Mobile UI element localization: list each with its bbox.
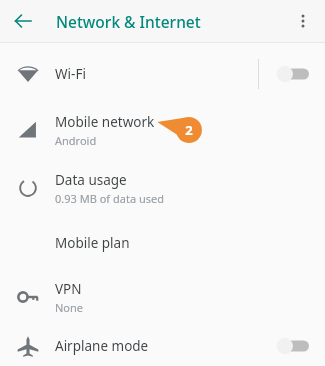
staticText: Data usage — [55, 171, 127, 189]
staticText: Wi-Fi — [55, 65, 86, 83]
staticText: Mobile network — [55, 113, 155, 131]
button[interactable]: Wi-Fi switch — [271, 59, 317, 89]
staticText: VPN — [55, 280, 82, 298]
button[interactable]: VPN — [0, 269, 325, 325]
button[interactable]: Back — [8, 5, 40, 37]
button[interactable]: Mobile network — [0, 101, 325, 159]
staticText: 2 — [185, 121, 193, 139]
button[interactable]: Wi-Fi — [0, 47, 325, 101]
button[interactable]: Airplane mode — [0, 325, 325, 366]
staticText: Airplane mode — [55, 337, 149, 355]
staticText: Android — [55, 133, 97, 148]
staticText: Network & Internet — [56, 11, 201, 32]
button[interactable]: Airplane mode switch — [271, 331, 317, 361]
button[interactable]: Mobile plan — [0, 217, 325, 269]
button[interactable]: More options — [287, 5, 319, 37]
staticText: Mobile plan — [55, 234, 130, 252]
staticText: 0.93 MB of data used — [55, 191, 164, 206]
staticText: None — [55, 300, 84, 315]
button[interactable]: Data usage — [0, 159, 325, 217]
